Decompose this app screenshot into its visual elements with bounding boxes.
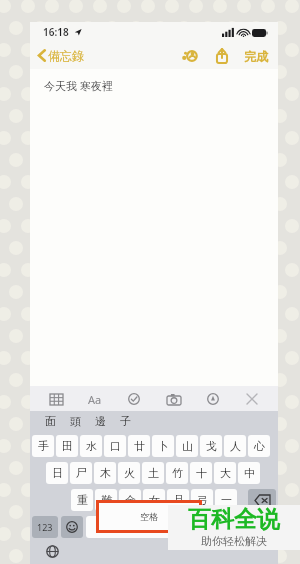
staticText: 土: [148, 466, 159, 480]
button[interactable]: 木: [94, 462, 116, 484]
button[interactable]: 難: [95, 489, 117, 511]
button[interactable]: 大: [214, 462, 236, 484]
staticText: 123: [37, 521, 53, 533]
staticText: 田: [62, 439, 73, 453]
button[interactable]: Camera: [164, 389, 184, 409]
staticText: 大: [220, 466, 231, 480]
button[interactable]: 手: [32, 435, 54, 457]
staticText: 卜: [158, 439, 169, 453]
button[interactable]: 火: [118, 462, 140, 484]
staticText: 火: [124, 466, 135, 480]
button[interactable]: Add people: [179, 45, 201, 67]
button[interactable]: 一: [215, 489, 237, 511]
staticText: 金: [125, 493, 136, 507]
button[interactable]: 水: [80, 435, 102, 457]
staticText: 日: [52, 466, 63, 480]
button[interactable]: 子: [120, 414, 131, 428]
button[interactable]: 弓: [191, 489, 213, 511]
staticText: 備忘錄: [48, 48, 84, 63]
staticText: 重: [77, 493, 88, 507]
staticText: 尸: [76, 466, 87, 480]
staticText: 木: [100, 466, 111, 480]
staticText: 竹: [172, 466, 183, 480]
staticText: 16:18: [43, 25, 69, 39]
button[interactable]: [61, 516, 83, 538]
button[interactable]: 廿: [128, 435, 150, 457]
button[interactable]: [248, 489, 276, 511]
button[interactable]: Aa: [85, 389, 105, 409]
button[interactable]: 頭: [70, 414, 81, 428]
staticText: 面: [45, 414, 56, 428]
staticText: 口: [110, 439, 121, 453]
staticText: 空格: [140, 511, 158, 522]
staticText: Aa: [88, 392, 102, 407]
button[interactable]: 日: [46, 462, 68, 484]
button[interactable]: 女: [143, 489, 165, 511]
button[interactable]: 戈: [200, 435, 222, 457]
button[interactable]: Close: [242, 389, 262, 409]
staticText: 人: [230, 439, 241, 453]
button[interactable]: 尸: [70, 462, 92, 484]
button[interactable]: 123: [32, 516, 58, 538]
button[interactable]: 田: [56, 435, 78, 457]
button[interactable]: 十: [190, 462, 212, 484]
staticText: 弓: [197, 493, 208, 507]
button[interactable]: Share: [211, 45, 233, 67]
staticText: 戈: [206, 439, 217, 453]
staticText: 月: [173, 493, 184, 507]
button[interactable]: 邊: [95, 414, 106, 428]
button[interactable]: Table: [46, 389, 66, 409]
staticText: 女: [149, 493, 160, 507]
staticText: 水: [86, 439, 97, 453]
button[interactable]: 山: [176, 435, 198, 457]
staticText: 一: [221, 493, 232, 507]
button[interactable]: 中: [238, 462, 260, 484]
button[interactable]: 重: [71, 489, 93, 511]
button[interactable]: 心: [248, 435, 270, 457]
button[interactable]: 面: [45, 414, 56, 428]
button[interactable]: 土: [142, 462, 164, 484]
staticText: 中: [244, 466, 255, 480]
staticText: 百科全说: [188, 505, 280, 534]
staticText: 難: [101, 493, 112, 507]
staticText: 今天我 寒夜裡: [44, 78, 113, 93]
button[interactable]: 金: [119, 489, 141, 511]
button[interactable]: 完成: [242, 49, 270, 64]
staticText: 廿: [134, 439, 145, 453]
button[interactable]: 口: [104, 435, 126, 457]
button[interactable]: Checklist: [124, 389, 144, 409]
staticText: 山: [182, 439, 193, 453]
staticText: 邊: [95, 414, 106, 428]
button[interactable]: 月: [167, 489, 189, 511]
staticText: 十: [196, 466, 207, 480]
staticText: 子: [120, 414, 131, 428]
staticText: 手: [38, 439, 49, 453]
staticText: 頭: [70, 414, 81, 428]
staticText: 完成: [244, 49, 268, 64]
staticText: 助你轻松解决: [201, 534, 267, 548]
button[interactable]: 人: [224, 435, 246, 457]
button[interactable]: 備忘錄: [38, 48, 84, 63]
button[interactable]: Switch keyboard: [42, 541, 62, 561]
button[interactable]: 竹: [166, 462, 188, 484]
button[interactable]: 卜: [152, 435, 174, 457]
button[interactable]: 空格: [86, 516, 276, 538]
staticText: 心: [254, 439, 265, 453]
button[interactable]: Markup: [203, 389, 223, 409]
